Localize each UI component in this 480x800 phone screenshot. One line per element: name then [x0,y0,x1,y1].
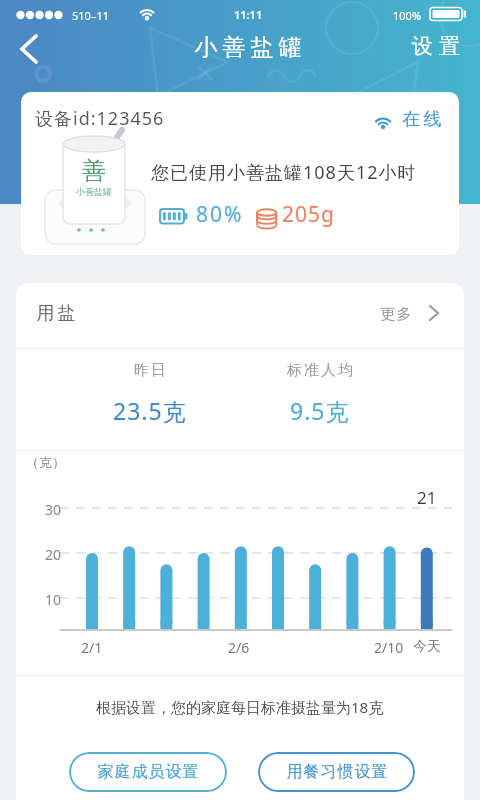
button[interactable]: 用盐 [16,283,464,347]
button[interactable]: 设置 [409,33,463,59]
staticText: 小善盐罐 [192,33,304,62]
button[interactable]: 用餐习惯设置 [258,752,415,792]
staticText: 2/6 [228,638,250,657]
staticText: 您已使用小善盐罐108天12小时 [151,160,417,185]
staticText: 在线 [401,108,443,131]
staticText: 根据设置，您的家庭每日标准摄盐量为18克 [96,697,384,717]
staticText: 今天 [413,638,441,656]
staticText: 510–11 [72,8,109,23]
staticText: 昨日 [133,361,167,380]
staticText: 205g [282,200,335,229]
staticText: 10 [45,590,62,609]
staticText: 善 [82,156,106,186]
button[interactable] [0,0,60,80]
staticText: 用餐习惯设置 [286,762,388,782]
staticText: 21 [417,486,437,509]
staticText: 2/1 [81,638,103,657]
staticText: 30 [45,500,62,519]
staticText: （克） [26,454,65,470]
staticText: 11:11 [234,7,263,22]
staticText: 20 [45,545,62,564]
staticText: 23.5克 [113,395,187,426]
staticText: 更多 [380,305,412,324]
staticText: 9.5克 [290,395,350,426]
button[interactable]: 在线 [401,108,443,131]
staticText: 小善盐罐 [76,186,112,197]
staticText: 家庭成员设置 [97,762,199,782]
staticText: 标准人均 [286,361,354,380]
staticText: 设置 [409,33,463,59]
button[interactable]: 家庭成员设置 [69,752,227,792]
staticText: 2/10 [374,638,404,657]
staticText: 用盐 [35,302,77,325]
staticText: 设备id:123456 [35,106,165,131]
staticText: 80% [196,200,244,229]
staticText: 100% [393,8,422,23]
